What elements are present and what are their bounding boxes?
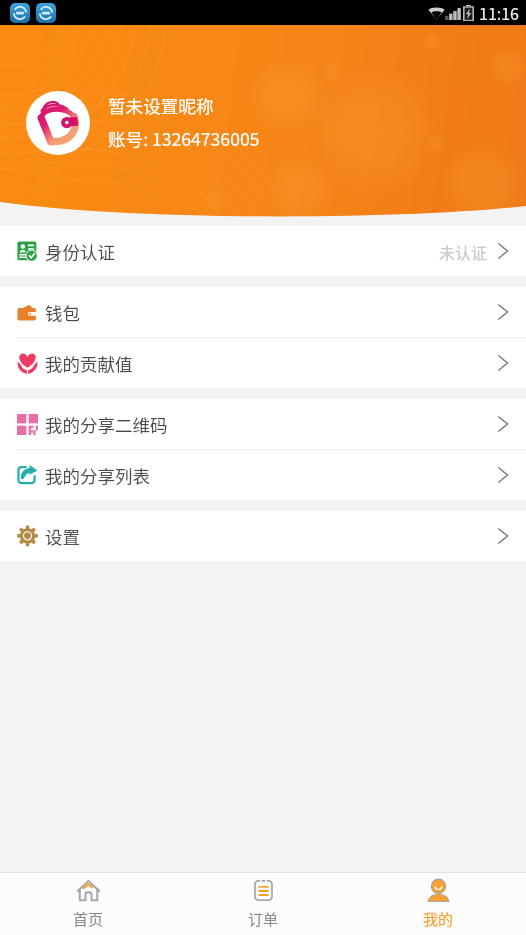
- staticText: 订单: [248, 908, 279, 930]
- staticText: 设置: [45, 524, 80, 549]
- button[interactable]: 头像 Avatar: [26, 91, 90, 155]
- button[interactable]: 我的分享二维码: [0, 399, 526, 449]
- button[interactable]: 我的: [351, 873, 526, 935]
- button[interactable]: 设置: [0, 511, 526, 561]
- staticText: 我的: [423, 908, 454, 930]
- staticText: 我的贡献值: [45, 351, 133, 376]
- staticText: 我的分享列表: [45, 463, 150, 488]
- staticText: 我的分享二维码: [45, 412, 168, 437]
- staticText: 身份认证: [45, 239, 115, 264]
- staticText: 暂未设置昵称: [108, 93, 214, 118]
- button[interactable]: 订单: [176, 873, 351, 935]
- button[interactable]: 钱包: [0, 287, 526, 337]
- button[interactable]: 我的贡献值: [0, 338, 526, 388]
- staticText: 首页: [73, 908, 104, 930]
- staticText: 钱包: [45, 300, 80, 325]
- staticText: 未认证: [439, 240, 488, 263]
- staticText: 11:16: [479, 1, 519, 24]
- staticText: 账号: 13264736005: [108, 126, 260, 151]
- button[interactable]: 首页: [0, 873, 176, 935]
- button[interactable]: 身份认证: [0, 226, 526, 276]
- button[interactable]: 我的分享列表: [0, 450, 526, 500]
